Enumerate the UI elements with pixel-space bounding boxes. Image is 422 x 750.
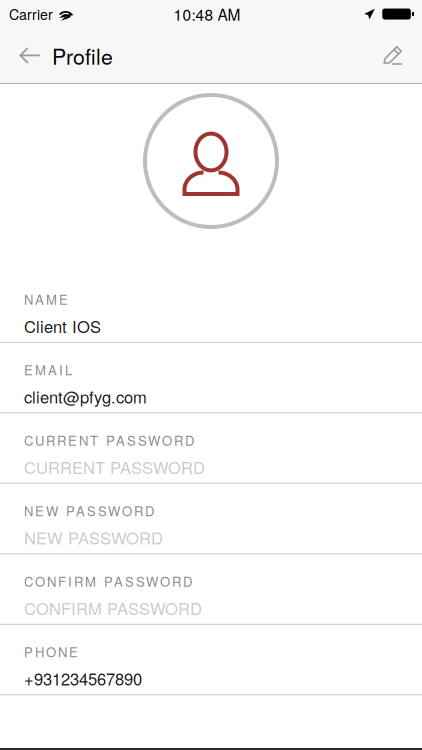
staticText: client@pfyg.com <box>24 384 147 408</box>
staticText: CONFIRM PASSWORD <box>24 596 202 620</box>
staticText: Client IOS <box>24 314 101 338</box>
staticText: EMAIL <box>24 360 72 379</box>
staticText: CURRENT PASSWORD <box>24 455 205 479</box>
button[interactable]: Edit <box>365 28 422 83</box>
staticText: +931234567890 <box>24 666 142 690</box>
staticText: NEW PASSWORD <box>24 525 163 549</box>
staticText: NAME <box>24 290 68 308</box>
staticText: CONFIRM PASSWORD <box>24 572 192 590</box>
staticText: Carrier <box>9 4 53 24</box>
staticText: 10:48 AM <box>173 3 240 25</box>
staticText: CURRENT PASSWORD <box>24 431 194 449</box>
staticText: PHONE <box>24 642 78 661</box>
staticText: Profile <box>52 40 113 71</box>
button[interactable]: Back <box>0 28 129 83</box>
staticText: NEW PASSWORD <box>24 501 154 520</box>
